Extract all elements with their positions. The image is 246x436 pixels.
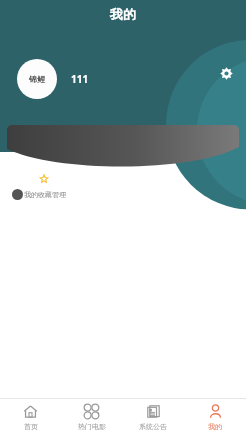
- staticText: 锦鲤: [29, 74, 45, 84]
- staticText: 我的收藏管理: [24, 190, 66, 199]
- button[interactable]: 系统公告: [122, 399, 184, 436]
- staticText: 首页: [24, 422, 38, 431]
- staticText: 热门电影: [78, 422, 106, 431]
- button[interactable]: 热门电影: [61, 399, 122, 436]
- button[interactable]: 首页: [0, 399, 61, 436]
- staticText: 我的: [208, 422, 222, 431]
- button[interactable]: Settings: [215, 62, 237, 84]
- button[interactable]: Avatar: [17, 59, 57, 99]
- button[interactable]: 我的: [184, 399, 246, 436]
- staticText: 111: [71, 72, 89, 86]
- staticText: 我的: [110, 6, 136, 22]
- staticText: 系统公告: [139, 422, 167, 431]
- button[interactable]: 我的收藏管理: [10, 172, 78, 203]
